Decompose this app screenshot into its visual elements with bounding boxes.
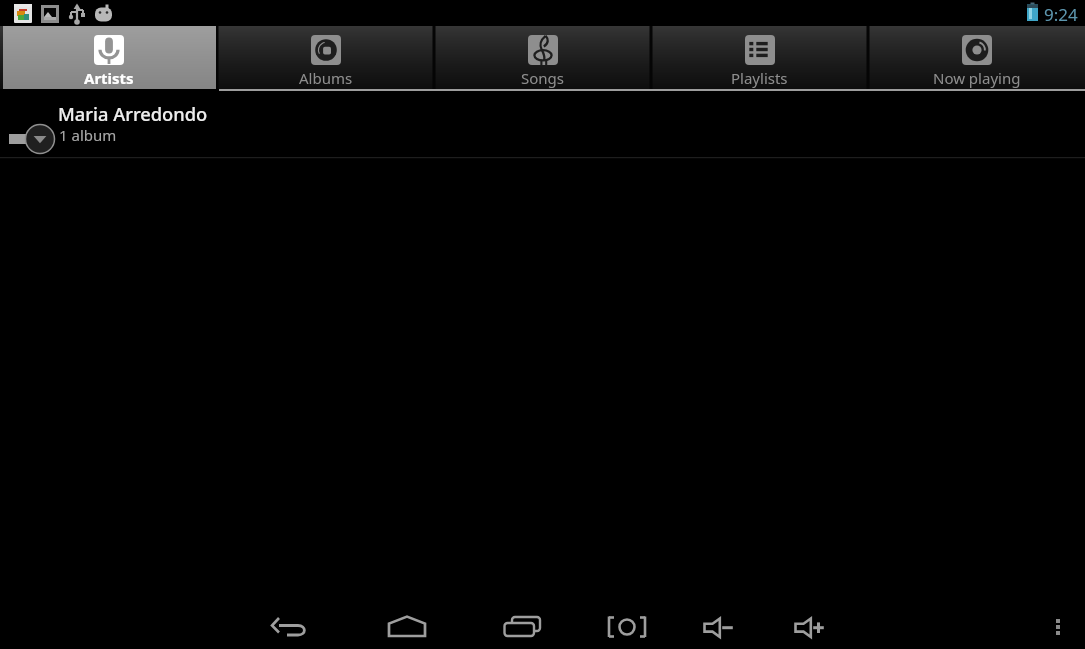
- staticText: Maria Arredondo: [58, 101, 208, 126]
- staticText: 1 album: [59, 125, 117, 145]
- button[interactable]: Screenshot: [603, 603, 651, 649]
- button[interactable]: Volume down: [695, 603, 743, 649]
- staticText: Artists: [84, 68, 134, 88]
- staticText: Albums: [299, 68, 353, 88]
- button[interactable]: More options: [1034, 603, 1082, 649]
- staticText: Playlists: [731, 68, 788, 88]
- button[interactable]: Home: [383, 603, 431, 649]
- button[interactable]: Recent apps: [500, 603, 548, 649]
- button[interactable]: Artists: [0, 26, 217, 89]
- button[interactable]: Songs: [434, 26, 651, 89]
- button[interactable]: Volume up: [786, 603, 834, 649]
- button[interactable]: Albums: [217, 26, 434, 89]
- button[interactable]: Back: [265, 603, 313, 649]
- staticText: Songs: [521, 68, 564, 88]
- staticText: 9:24: [1044, 3, 1078, 26]
- button[interactable]: Playlists: [651, 26, 868, 89]
- other: Expand: [0, 92, 1085, 157]
- staticText: Now playing: [933, 68, 1021, 88]
- button[interactable]: Maria Arredondo: [0, 92, 1085, 157]
- button[interactable]: Now playing: [868, 26, 1085, 89]
